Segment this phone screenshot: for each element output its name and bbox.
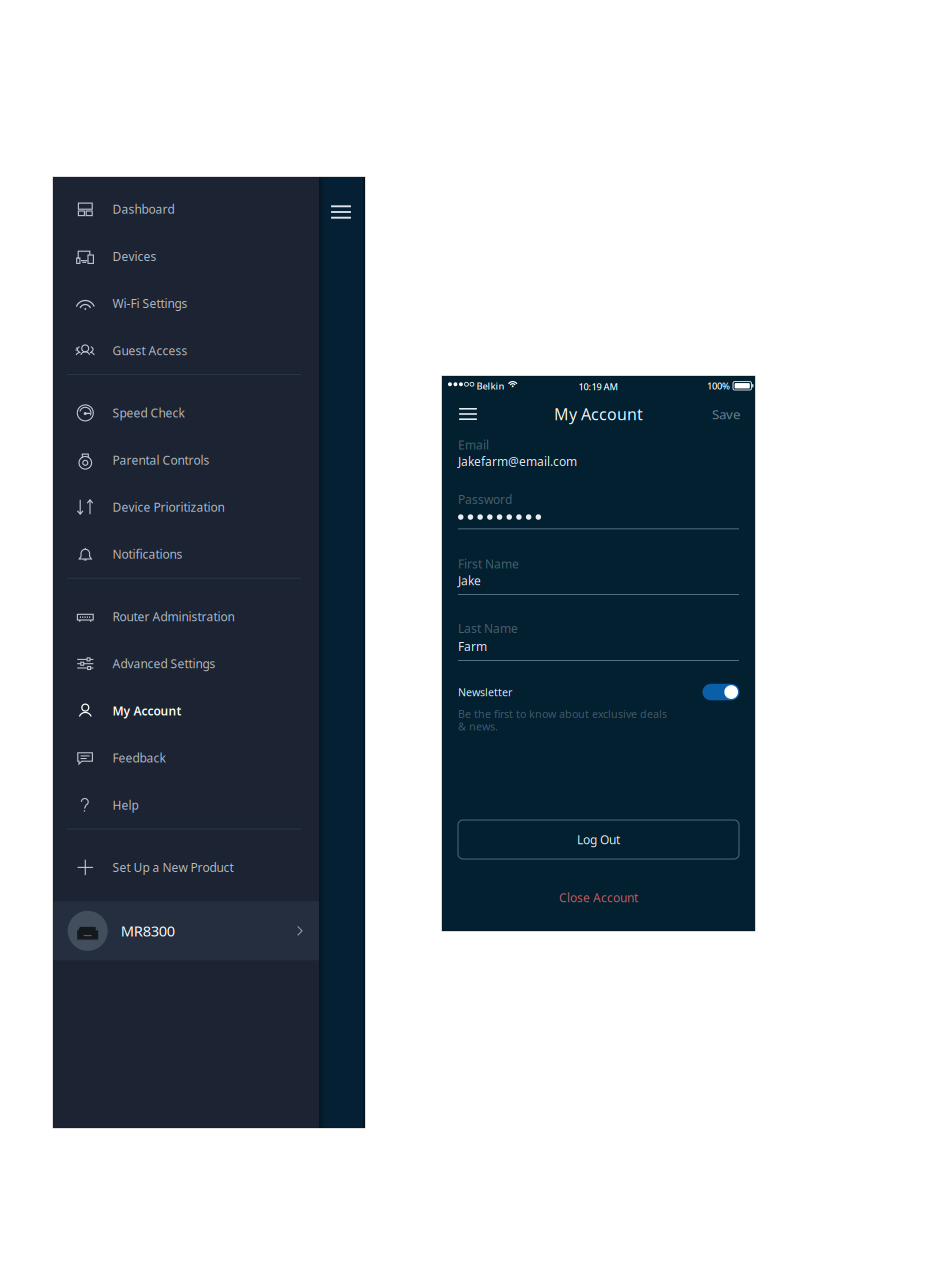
- button[interactable]: My Account: [53, 687, 319, 734]
- staticText: Notifications: [112, 546, 182, 562]
- button[interactable]: Dashboard: [53, 186, 319, 233]
- button[interactable]: Wi-Fi Settings: [53, 280, 319, 327]
- button[interactable]: Help: [53, 781, 319, 829]
- staticText: First Name: [458, 556, 519, 572]
- staticText: Be the first to know about exclusive dea…: [458, 707, 667, 721]
- button[interactable]: Set Up a New Product: [53, 844, 319, 891]
- staticText: Feedback: [112, 750, 165, 766]
- staticText: Jakefarm@email.com: [458, 453, 577, 469]
- staticText: My Account: [112, 703, 181, 719]
- button[interactable]: Speed Check: [53, 389, 319, 436]
- staticText: Email: [458, 437, 489, 453]
- staticText: MR8300: [121, 921, 175, 941]
- button[interactable]: Newsletter: [702, 684, 739, 700]
- staticText: Advanced Settings: [112, 656, 215, 672]
- staticText: Jake: [458, 573, 481, 589]
- button[interactable]: Router Administration: [53, 593, 319, 640]
- staticText: Newsletter: [458, 685, 512, 699]
- staticText: Save: [712, 405, 741, 423]
- staticText: Set Up a New Product: [112, 859, 233, 875]
- staticText: Help: [112, 797, 138, 813]
- staticText: Devices: [112, 248, 156, 264]
- button[interactable]: Close menu: [318, 191, 364, 233]
- staticText: Device Prioritization: [112, 499, 224, 515]
- button[interactable]: Guest Access: [53, 327, 319, 374]
- staticText: 100%: [707, 380, 730, 392]
- staticText: Belkin: [477, 380, 505, 392]
- staticText: Log Out: [577, 831, 620, 847]
- button[interactable]: Feedback: [53, 734, 319, 781]
- button[interactable]: Log Out: [458, 820, 739, 859]
- staticText: Last Name: [458, 620, 518, 636]
- button[interactable]: Device Prioritization: [53, 484, 319, 531]
- staticText: Dashboard: [112, 201, 174, 217]
- button[interactable]: Close Account: [458, 881, 739, 913]
- button[interactable]: Save: [702, 398, 755, 430]
- staticText: 10:19 AM: [578, 380, 618, 393]
- staticText: Password: [458, 491, 512, 507]
- staticText: Close Account: [559, 889, 638, 905]
- button[interactable]: Advanced Settings: [53, 640, 319, 687]
- staticText: Guest Access: [112, 342, 187, 358]
- staticText: Farm: [458, 638, 487, 654]
- staticText: My Account: [554, 403, 643, 425]
- staticText: & news.: [458, 719, 498, 733]
- button[interactable]: MR8300: [53, 901, 319, 960]
- button[interactable]: Parental Controls: [53, 436, 319, 483]
- staticText: Router Administration: [112, 609, 234, 624]
- staticText: Parental Controls: [112, 452, 209, 468]
- button[interactable]: Notifications: [53, 531, 319, 578]
- button[interactable]: Open menu: [448, 398, 488, 430]
- button[interactable]: Devices: [53, 233, 319, 280]
- staticText: Speed Check: [112, 405, 184, 421]
- staticText: Wi-Fi Settings: [112, 295, 187, 311]
